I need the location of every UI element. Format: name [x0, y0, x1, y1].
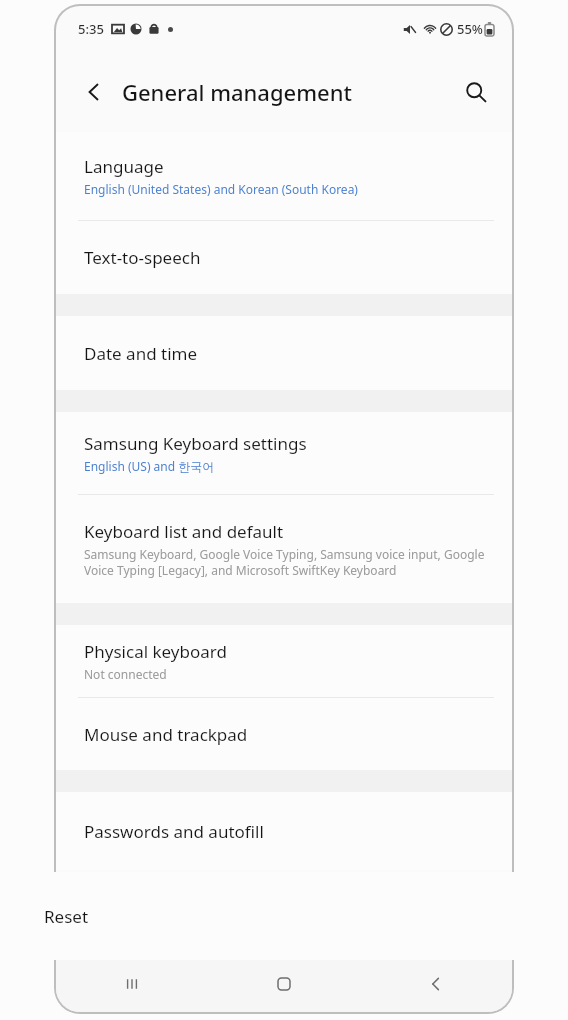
staticText: Not connected	[84, 666, 167, 682]
button[interactable]: Reset	[4, 872, 564, 960]
button[interactable]: Recent apps	[56, 956, 208, 1012]
staticText: English (United States) and Korean (Sout…	[84, 181, 358, 197]
button[interactable]: Back	[360, 956, 512, 1012]
staticText: Reset	[44, 905, 89, 928]
staticText: Mouse and trackpad	[84, 723, 248, 746]
staticText: 55%	[457, 20, 483, 38]
button[interactable]: Home	[208, 956, 360, 1012]
button[interactable]: Samsung Keyboard settings	[56, 412, 512, 494]
staticText: General management	[122, 77, 352, 107]
staticText: 5:35	[78, 20, 104, 38]
button[interactable]: Mouse and trackpad	[56, 698, 512, 770]
button[interactable]: Search	[454, 70, 498, 114]
staticText: Samsung Keyboard settings	[84, 432, 307, 455]
staticText: Passwords and autofill	[84, 820, 264, 843]
staticText: Samsung Keyboard, Google Voice Typing, S…	[84, 546, 492, 579]
button[interactable]: Back	[72, 70, 116, 114]
button[interactable]: Physical keyboard	[56, 625, 512, 697]
button[interactable]: Text-to-speech	[56, 221, 512, 294]
staticText: English (US) and 한국어	[84, 458, 215, 474]
staticText: Date and time	[84, 342, 198, 365]
button[interactable]: Keyboard list and default	[56, 495, 512, 603]
staticText: Language	[84, 155, 164, 178]
button[interactable]: Date and time	[56, 316, 512, 390]
button[interactable]: Passwords and autofill	[56, 792, 512, 870]
staticText: Text-to-speech	[84, 246, 201, 269]
staticText: Physical keyboard	[84, 640, 227, 663]
staticText: Keyboard list and default	[84, 520, 284, 543]
button[interactable]: Language	[56, 132, 512, 220]
